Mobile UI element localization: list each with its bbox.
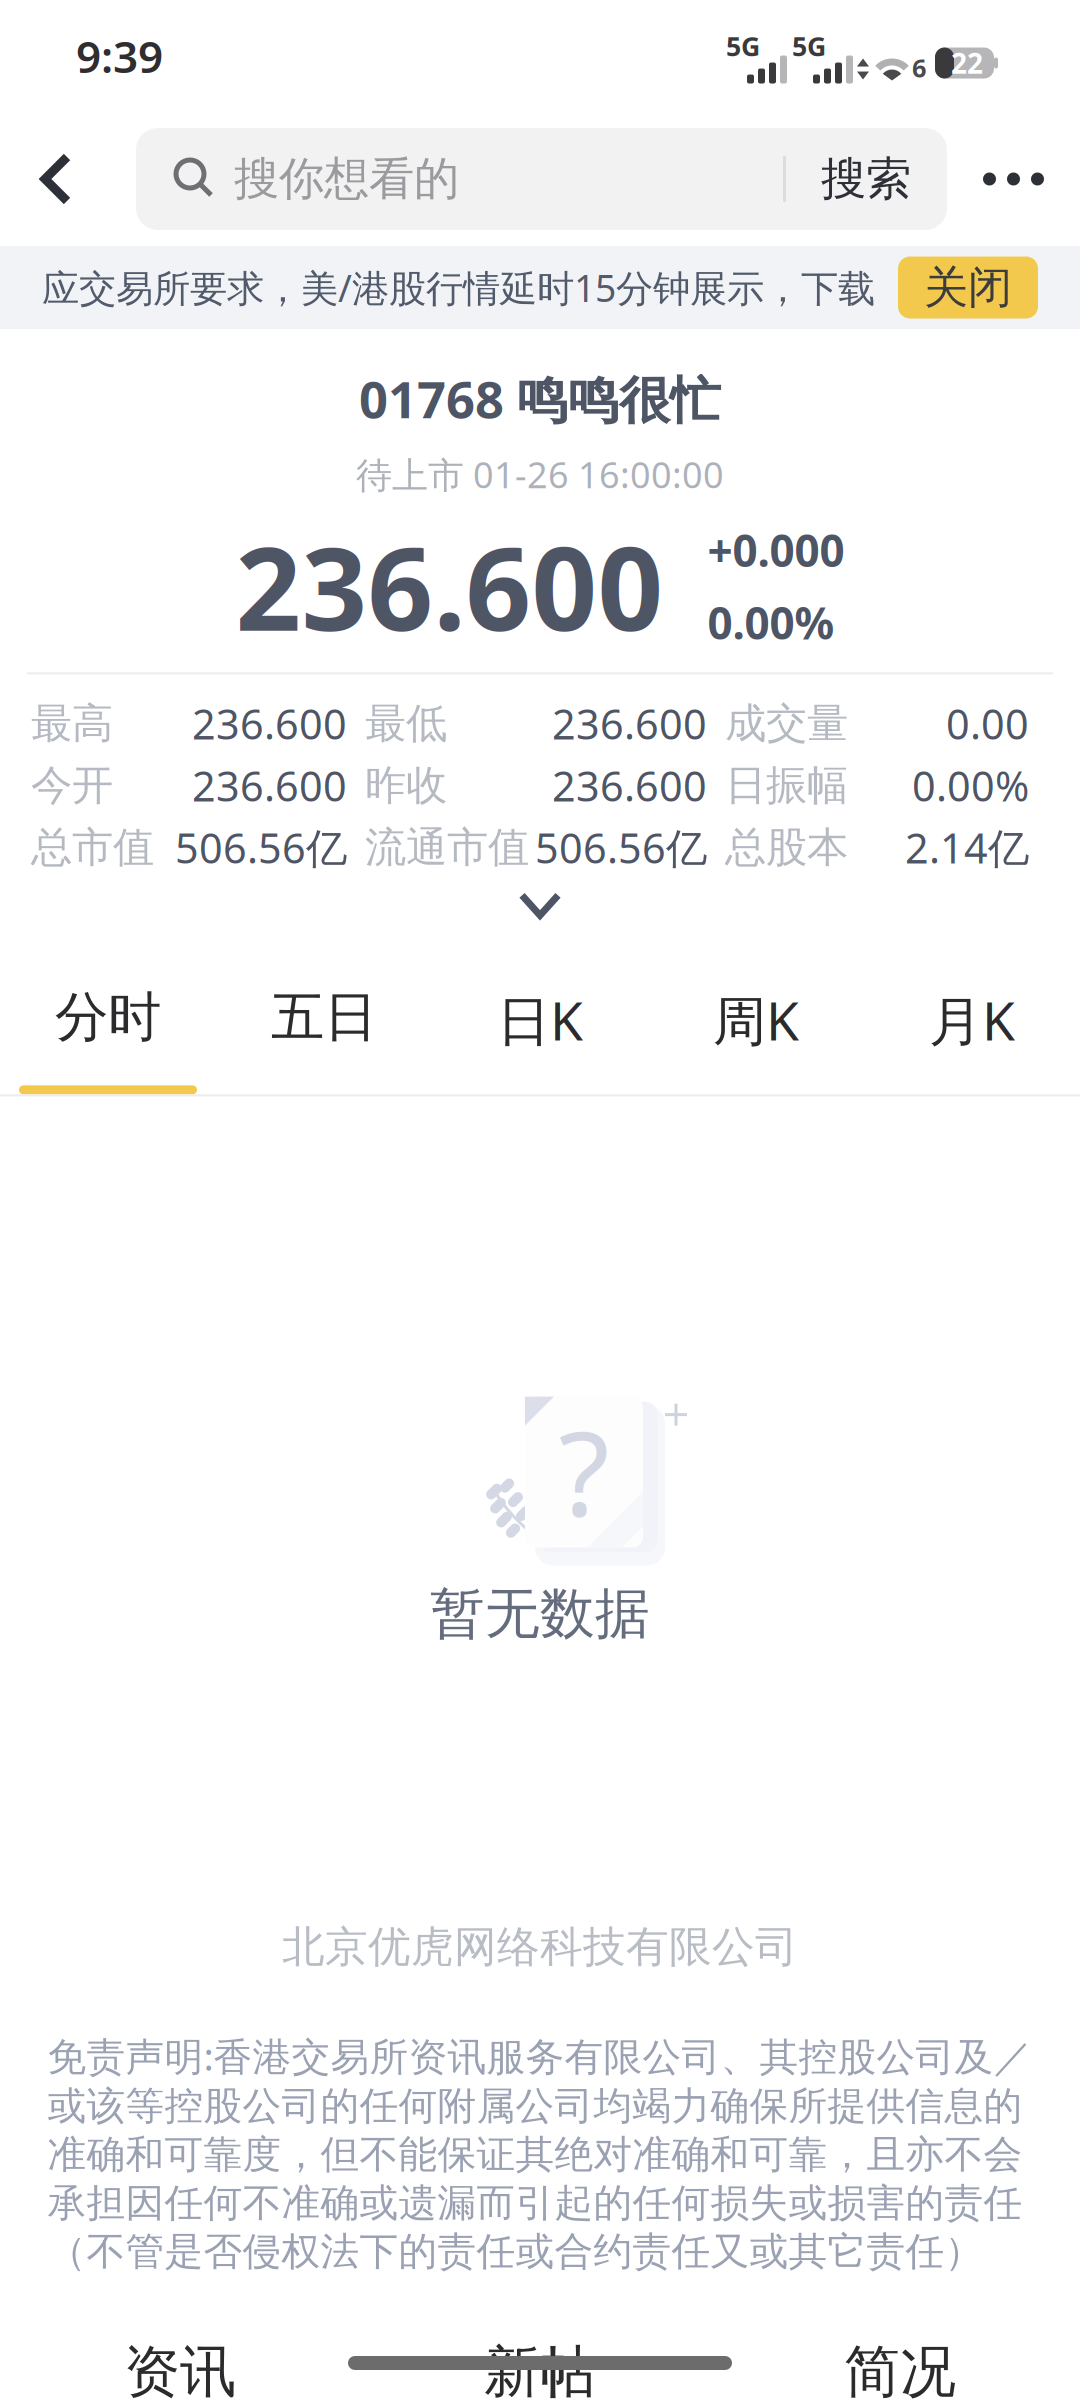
staticText: 日K	[497, 984, 583, 1055]
staticText: 506.56亿	[175, 820, 347, 875]
staticText: 流通市值	[365, 822, 529, 873]
staticText: 0.00%	[912, 758, 1029, 813]
staticText: 搜索	[821, 151, 911, 207]
staticText: 最低	[365, 698, 447, 749]
staticText: 成交量	[725, 698, 848, 749]
staticText: 236.600	[552, 696, 707, 751]
staticText: 搜你想看的	[234, 151, 459, 207]
staticText: 9:39	[76, 27, 163, 85]
staticText: 今开	[31, 760, 113, 811]
staticText: 236.600	[552, 758, 707, 813]
staticText: 5G	[726, 28, 760, 63]
staticText: 新帖	[484, 2338, 596, 2400]
staticText: 周K	[713, 984, 799, 1055]
staticText: 236.600	[192, 696, 347, 751]
staticText: 236.600	[192, 758, 347, 813]
button[interactable]: 资讯	[0, 2344, 360, 2400]
button[interactable]: 分时	[0, 976, 216, 1094]
staticText: 5G	[792, 28, 826, 63]
button[interactable]: 搜索	[136, 128, 947, 230]
button[interactable]: 新帖	[360, 2344, 720, 2400]
staticText: 暂无数据	[430, 1580, 650, 1647]
staticText: 应交易所要求，美/港股行情延时15分钟展示，下载	[42, 263, 875, 312]
button[interactable]: 关闭	[898, 256, 1038, 318]
staticText: 分时	[55, 984, 161, 1050]
staticText: 2.14亿	[905, 820, 1029, 875]
staticText: 01768 鸣鸣很忙	[359, 365, 721, 432]
button[interactable]: 月K	[864, 976, 1080, 1094]
staticText: 关闭	[924, 260, 1012, 314]
staticText: 总市值	[31, 822, 154, 873]
staticText: 22	[951, 44, 983, 82]
staticText: 0.00	[946, 696, 1029, 751]
staticText: +0.000	[707, 521, 844, 579]
staticText: 0.00%	[707, 593, 834, 652]
staticText: 506.56亿	[535, 820, 707, 875]
staticText: 昨收	[365, 760, 447, 811]
staticText: 6	[912, 51, 926, 84]
staticText: 待上市 01-26 16:00:00	[356, 450, 724, 498]
button[interactable]: 简况	[720, 2344, 1080, 2400]
staticText: 五日	[271, 984, 377, 1050]
button[interactable]: 五日	[216, 976, 432, 1094]
staticText: 月K	[929, 984, 1015, 1055]
staticText: 免责声明:香港交易所资讯服务有限公司、其控股公司及／或该等控股公司的任何附属公司…	[47, 2030, 1032, 2275]
staticText: 最高	[31, 698, 113, 749]
staticText: 总股本	[725, 822, 848, 873]
button[interactable]: 周K	[648, 976, 864, 1094]
staticText: 北京优虎网络科技有限公司	[282, 1921, 798, 1973]
button[interactable]: 更多	[947, 112, 1080, 246]
staticText: 236.600	[235, 510, 663, 662]
staticText: 日振幅	[725, 760, 848, 811]
staticText: 简况	[844, 2338, 956, 2400]
button[interactable]: 展开更多	[460, 878, 620, 932]
staticText: 资讯	[124, 2338, 236, 2400]
staticText: ?	[558, 1392, 609, 1548]
button[interactable]: 返回	[0, 112, 136, 246]
button[interactable]: 日K	[432, 976, 648, 1094]
